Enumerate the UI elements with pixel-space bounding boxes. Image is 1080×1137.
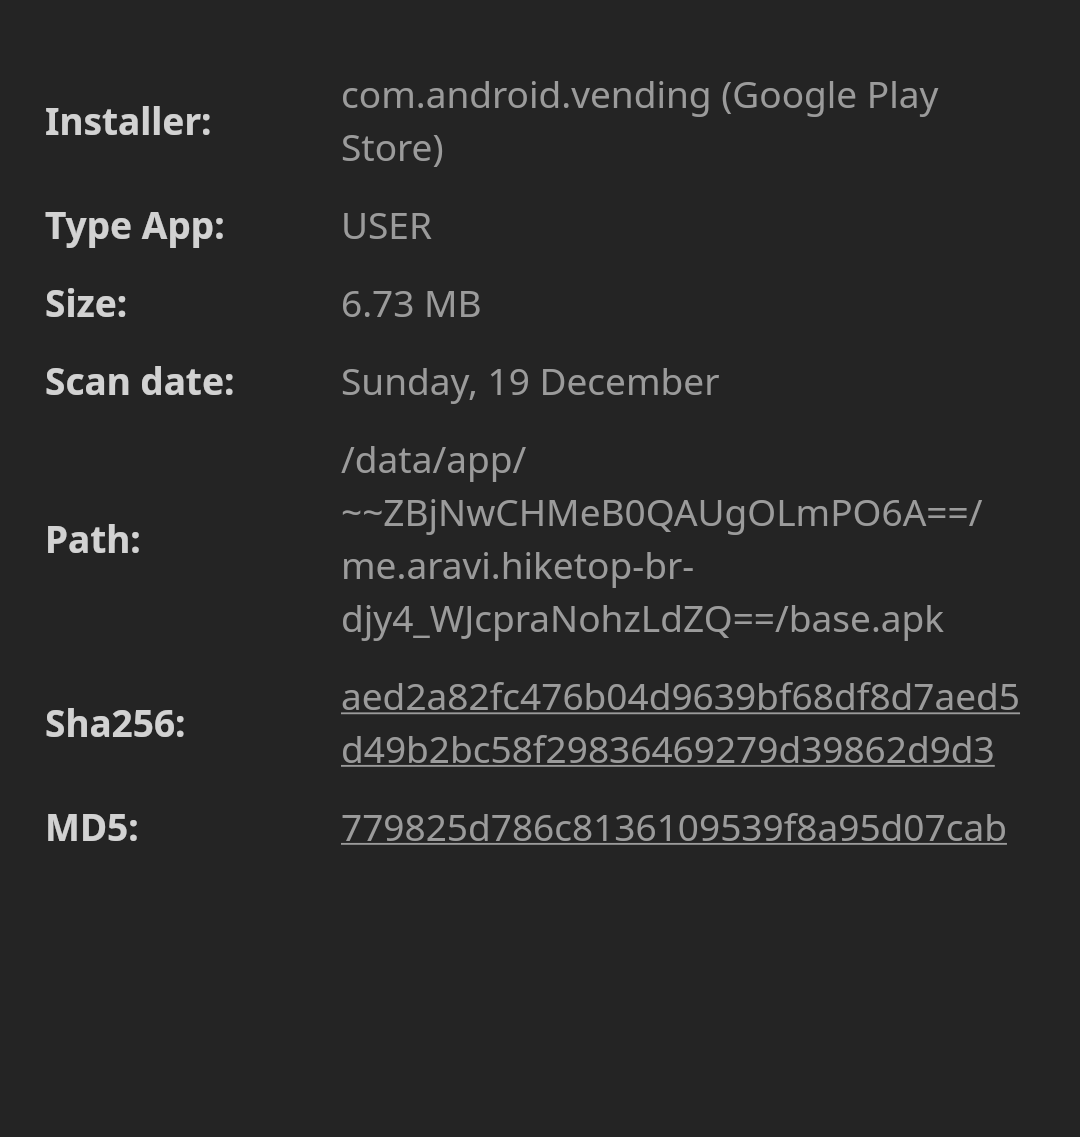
staticText: com.android.vending (Google Play Store)	[341, 68, 1035, 171]
staticText: Sha256:	[45, 697, 186, 747]
button[interactable]: MD5:	[0, 787, 1080, 865]
staticText: Path:	[45, 513, 141, 563]
staticText: Scan date:	[45, 355, 235, 405]
staticText: Type App:	[45, 199, 225, 249]
staticText: Sunday, 19 December	[341, 355, 720, 405]
staticText: Installer:	[45, 95, 212, 145]
button[interactable]: Sha256:	[0, 656, 1080, 787]
staticText: aed2a82fc476b04d9639bf68df8d7aed5d49b2bc…	[341, 670, 1035, 773]
staticText: 779825d786c8136109539f8a95d07cab	[341, 801, 1007, 851]
staticText: USER	[341, 199, 432, 249]
staticText: MD5:	[45, 801, 139, 851]
staticText: 6.73 MB	[341, 277, 482, 327]
staticText: Size:	[45, 277, 128, 327]
staticText: /data/app/~~ZBjNwCHMeB0QAUgOLmPO6A==/me.…	[341, 433, 1035, 642]
